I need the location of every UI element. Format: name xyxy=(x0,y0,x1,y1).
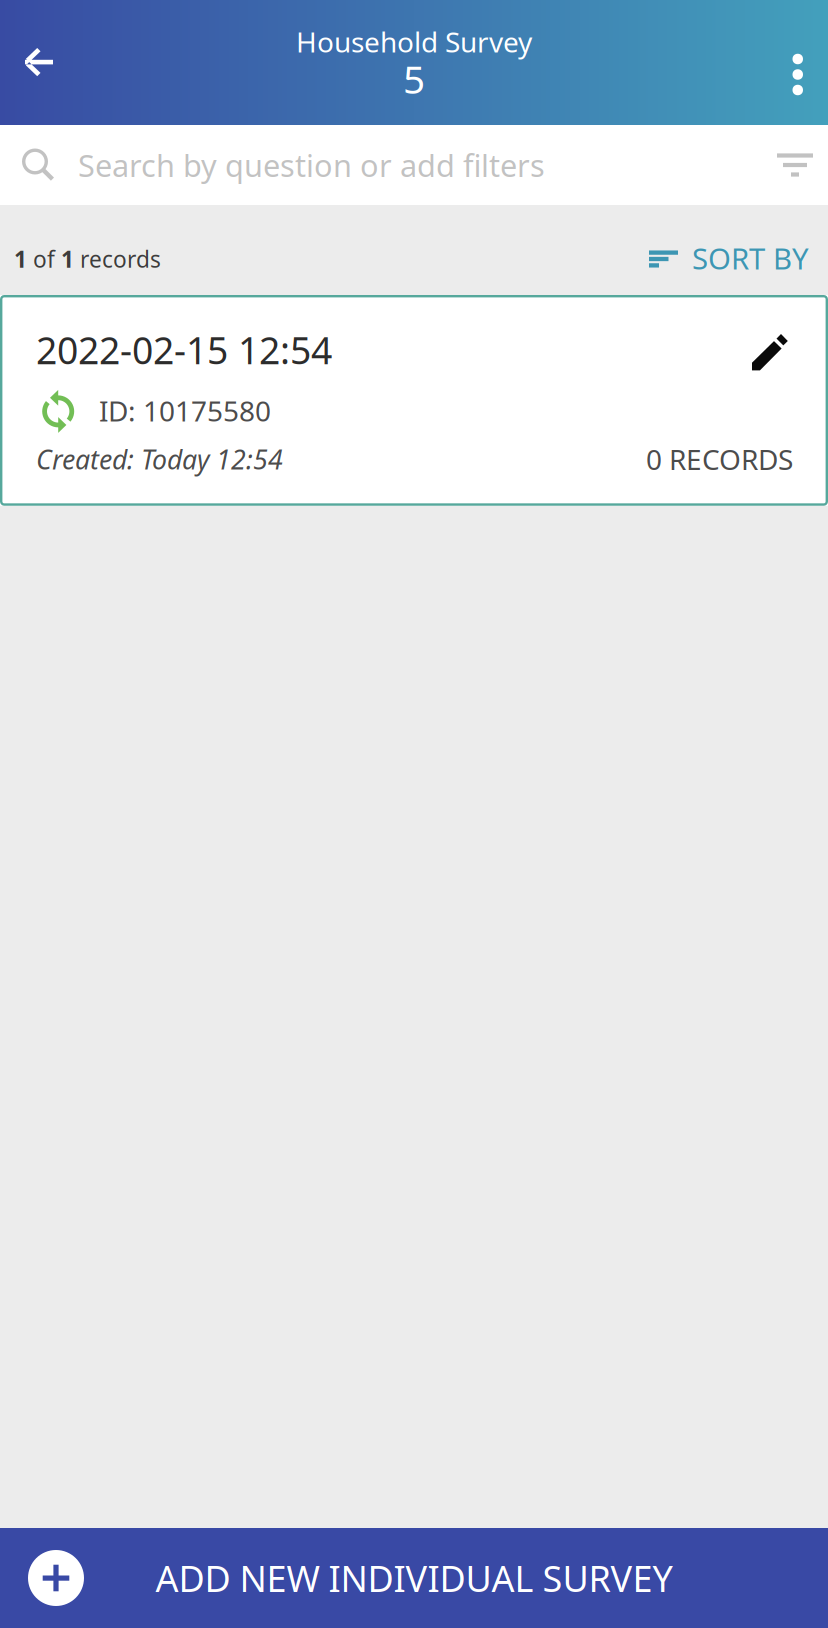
button[interactable]: Filters xyxy=(753,125,828,205)
staticText: SORT BY xyxy=(692,238,809,277)
staticText: 0 RECORDS xyxy=(646,441,793,478)
staticText: 2022-02-15 12:54 xyxy=(36,325,332,375)
staticText: Search by question or add filters xyxy=(78,145,545,185)
button[interactable]: Back xyxy=(0,0,94,125)
staticText: Household Survey xyxy=(296,23,532,60)
button[interactable]: More options xyxy=(744,0,828,125)
button[interactable]: 2022-02-15 12:54 xyxy=(0,295,828,506)
staticText: ID: 10175580 xyxy=(99,392,271,429)
staticText: 5 xyxy=(403,53,425,104)
staticText: ADD NEW INDIVIDUAL SURVEY xyxy=(155,1554,672,1602)
staticText: Created: Today 12:54 xyxy=(36,441,283,477)
staticText: 1 of 1 records xyxy=(14,244,161,274)
button[interactable]: ADD NEW INDIVIDUAL SURVEY xyxy=(0,1528,828,1628)
button[interactable]: SORT BY xyxy=(625,204,828,295)
